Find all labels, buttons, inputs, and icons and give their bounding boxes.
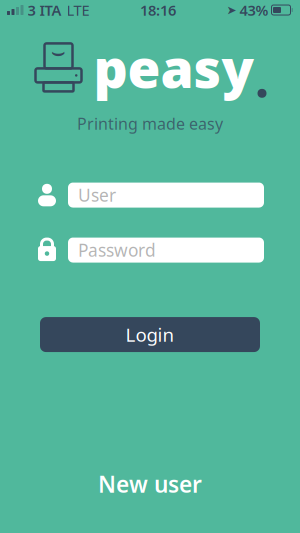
staticText: peasy	[93, 32, 254, 103]
staticText: 43%	[239, 0, 268, 20]
staticText: 18:16	[140, 0, 176, 20]
staticText: Login	[125, 322, 174, 347]
staticText: LTE	[66, 0, 89, 20]
staticText: Password	[78, 239, 156, 262]
button[interactable]: New user	[74, 461, 226, 507]
staticText: User	[78, 184, 116, 207]
staticText: 3 ITA	[27, 0, 61, 20]
staticText: ⌣	[51, 41, 66, 63]
staticText: New user	[98, 469, 202, 499]
button[interactable]: Login	[40, 317, 260, 352]
staticText: ➤	[226, 3, 236, 17]
staticText: Printing made easy	[77, 113, 223, 134]
